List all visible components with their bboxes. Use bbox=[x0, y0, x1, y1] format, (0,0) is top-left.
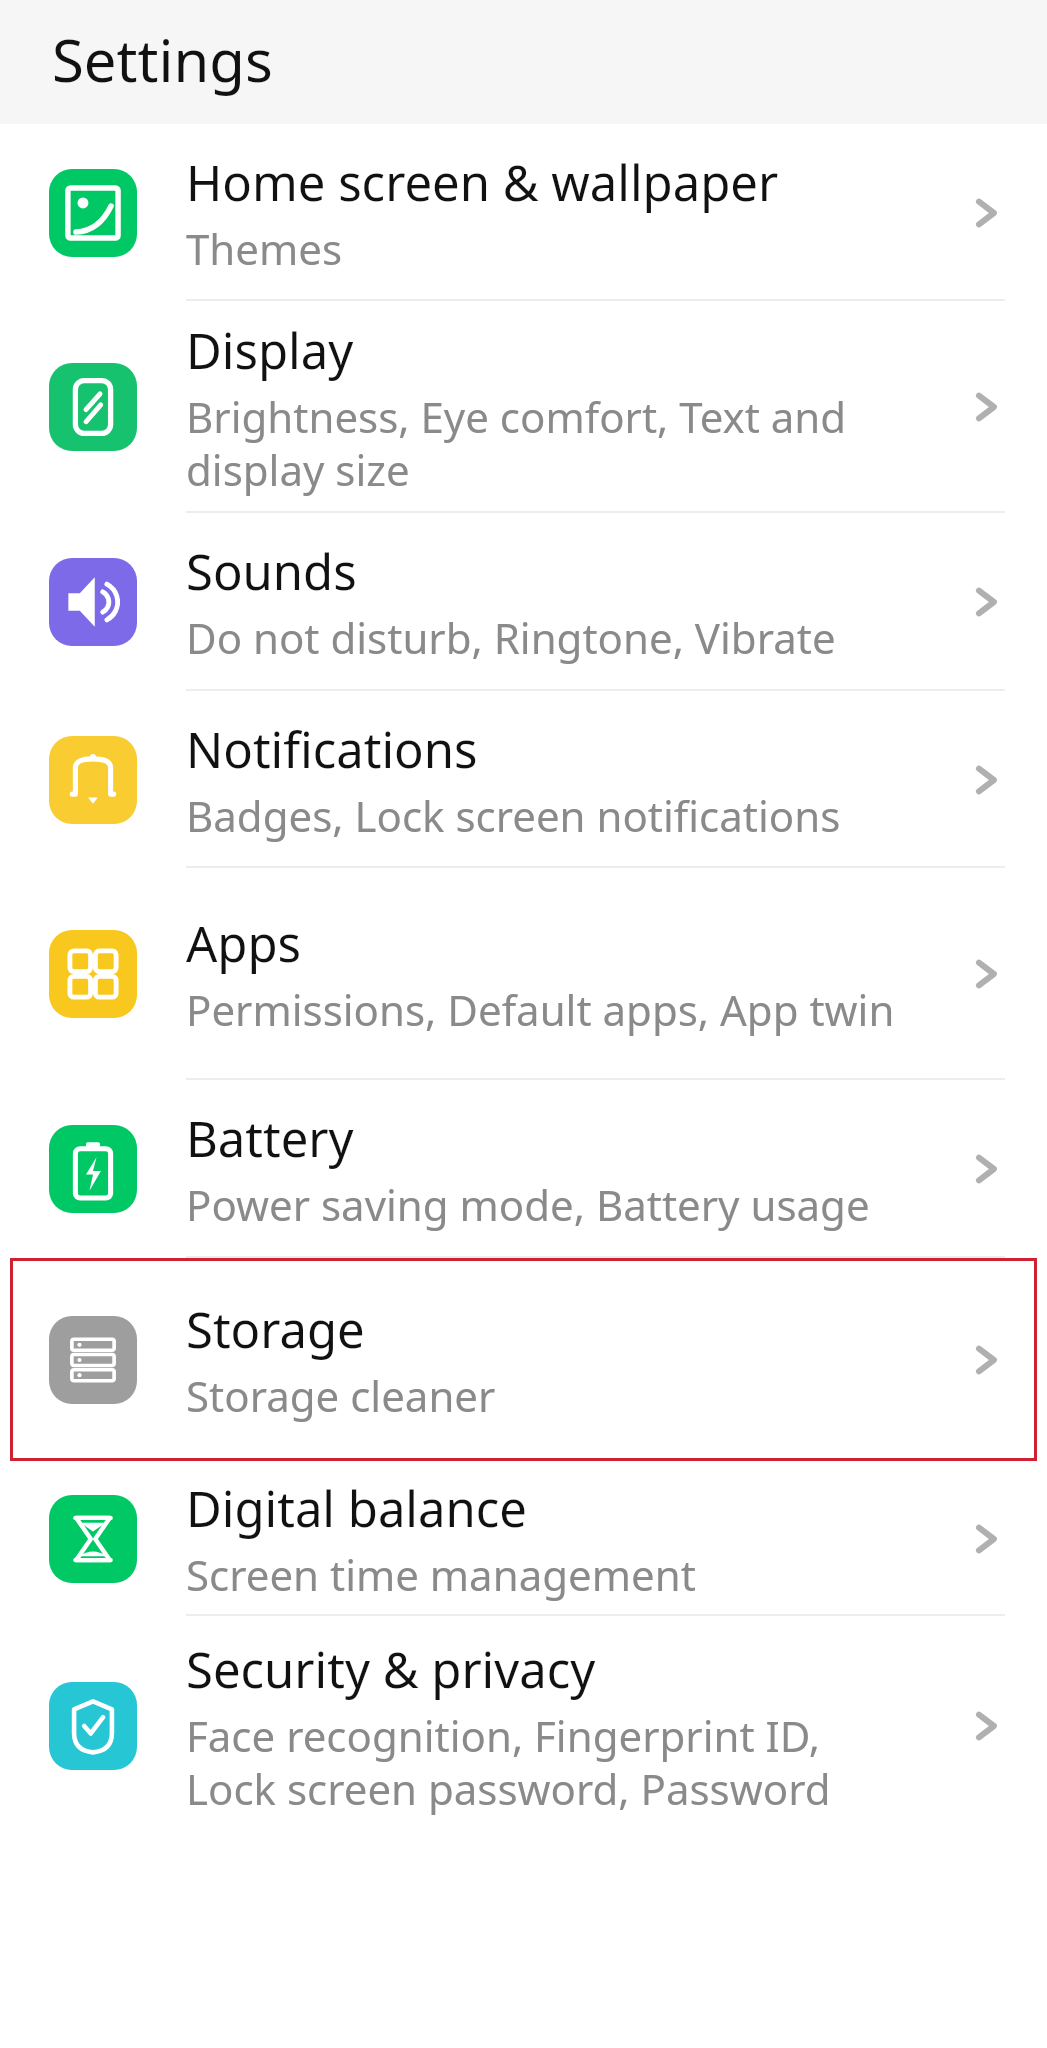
button[interactable]: Apps bbox=[0, 868, 1047, 1080]
staticText: Notifications bbox=[186, 716, 478, 783]
staticText: Home screen & wallpaper bbox=[186, 149, 779, 216]
staticText: Display bbox=[186, 317, 354, 384]
staticText: Permissions, Default apps, App twin bbox=[186, 981, 895, 1038]
staticText: Screen time management bbox=[186, 1546, 696, 1603]
button[interactable]: Sounds bbox=[0, 513, 1047, 691]
button[interactable]: Notifications bbox=[0, 691, 1047, 868]
button[interactable]: Battery bbox=[0, 1080, 1047, 1258]
staticText: Digital balance bbox=[186, 1475, 527, 1542]
staticText: Security & privacy bbox=[186, 1636, 596, 1703]
staticText: Face recognition, Fingerprint ID, Lock s… bbox=[186, 1707, 911, 1817]
staticText: Storage bbox=[186, 1296, 365, 1363]
button[interactable]: Display bbox=[0, 301, 1047, 513]
staticText: Battery bbox=[186, 1105, 354, 1172]
staticText: Brightness, Eye comfort, Text and displa… bbox=[186, 388, 911, 498]
staticText: Do not disturb, Ringtone, Vibrate bbox=[186, 609, 836, 666]
staticText: Apps bbox=[186, 910, 302, 977]
staticText: Badges, Lock screen notifications bbox=[186, 787, 841, 844]
button[interactable]: Storage bbox=[0, 1258, 1047, 1461]
staticText: Settings bbox=[52, 20, 273, 99]
button[interactable]: Home screen & wallpaper bbox=[0, 124, 1047, 301]
staticText: Sounds bbox=[186, 538, 357, 605]
staticText: Themes bbox=[186, 220, 343, 277]
button[interactable]: Security & privacy bbox=[0, 1616, 1047, 1836]
staticText: Storage cleaner bbox=[186, 1367, 496, 1424]
button[interactable]: Digital balance bbox=[0, 1461, 1047, 1616]
staticText: Power saving mode, Battery usage bbox=[186, 1176, 870, 1233]
